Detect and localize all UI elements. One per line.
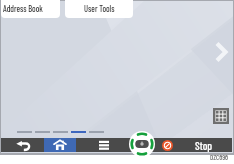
staticText: Stop bbox=[195, 139, 213, 152]
button[interactable]: All applications bbox=[213, 108, 229, 124]
staticText: User Tools bbox=[84, 3, 115, 13]
staticText: Address Book bbox=[3, 3, 43, 13]
staticText: DZC696 bbox=[210, 153, 229, 161]
button[interactable]: Home bbox=[44, 138, 76, 152]
button[interactable]: Stop bbox=[133, 138, 232, 152]
button[interactable]: Next page bbox=[211, 40, 234, 64]
button[interactable]: Menu bbox=[76, 138, 133, 152]
button[interactable]: Energy Saver bbox=[129, 131, 155, 157]
button[interactable]: User Tools bbox=[65, 0, 133, 18]
button[interactable]: Address Book bbox=[1, 0, 60, 18]
button[interactable]: Back bbox=[1, 138, 44, 152]
